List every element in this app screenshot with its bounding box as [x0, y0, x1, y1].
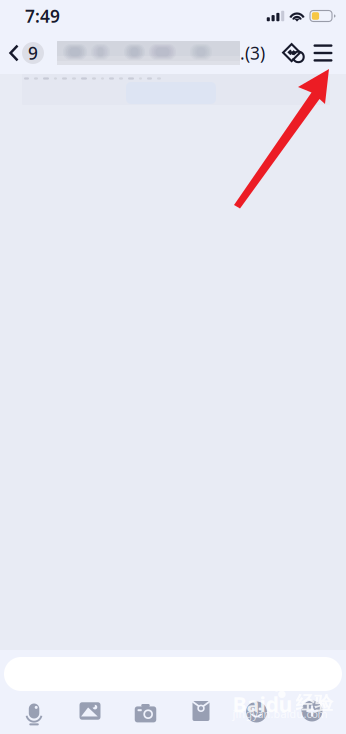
button[interactable]: Red packet [173, 695, 229, 727]
button[interactable]: More [284, 695, 340, 727]
button[interactable]: Menu [307, 32, 339, 74]
button[interactable]: Mark all read [277, 32, 307, 74]
staticText: .(3) [240, 41, 265, 64]
staticText: jingyan.baidu.com [232, 707, 327, 721]
button[interactable]: Emoji [229, 695, 284, 727]
button[interactable]: Back, 9 unread [0, 32, 48, 74]
staticText: Baidu [232, 690, 292, 718]
button[interactable]: Camera [118, 695, 173, 727]
staticText: 7:49 [25, 4, 60, 27]
staticText: 9 [28, 41, 38, 64]
button[interactable]: Voice message [6, 695, 62, 727]
button[interactable]: Photos [62, 695, 118, 727]
staticText: 经验 [295, 692, 333, 715]
